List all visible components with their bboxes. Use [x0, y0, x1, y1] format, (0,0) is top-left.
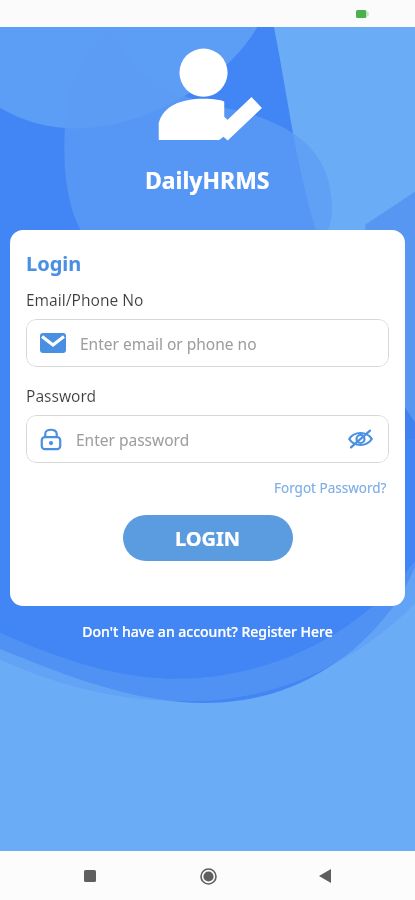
staticText: DailyHRMS: [145, 164, 270, 195]
staticText: Enter password: [76, 429, 343, 450]
button[interactable]: Home: [188, 856, 228, 896]
button[interactable]: Show password: [343, 422, 377, 456]
staticText: Enter email or phone no: [80, 333, 257, 354]
button[interactable]: Enter password: [26, 415, 389, 463]
staticText: Login: [26, 250, 82, 277]
button[interactable]: Enter email or phone no: [26, 319, 389, 367]
staticText: Password: [26, 385, 97, 406]
button[interactable]: Don't have an account? Register Here: [78, 618, 337, 645]
staticText: Email/Phone No: [26, 289, 144, 310]
button[interactable]: Forgot Password?: [272, 477, 389, 499]
button[interactable]: Recents: [70, 856, 110, 896]
staticText: Don't have an account? Register Here: [82, 622, 333, 641]
staticText: Forgot Password?: [274, 479, 387, 497]
button[interactable]: Back: [305, 856, 345, 896]
staticText: LOGIN: [175, 525, 241, 552]
button[interactable]: LOGIN: [123, 515, 293, 561]
